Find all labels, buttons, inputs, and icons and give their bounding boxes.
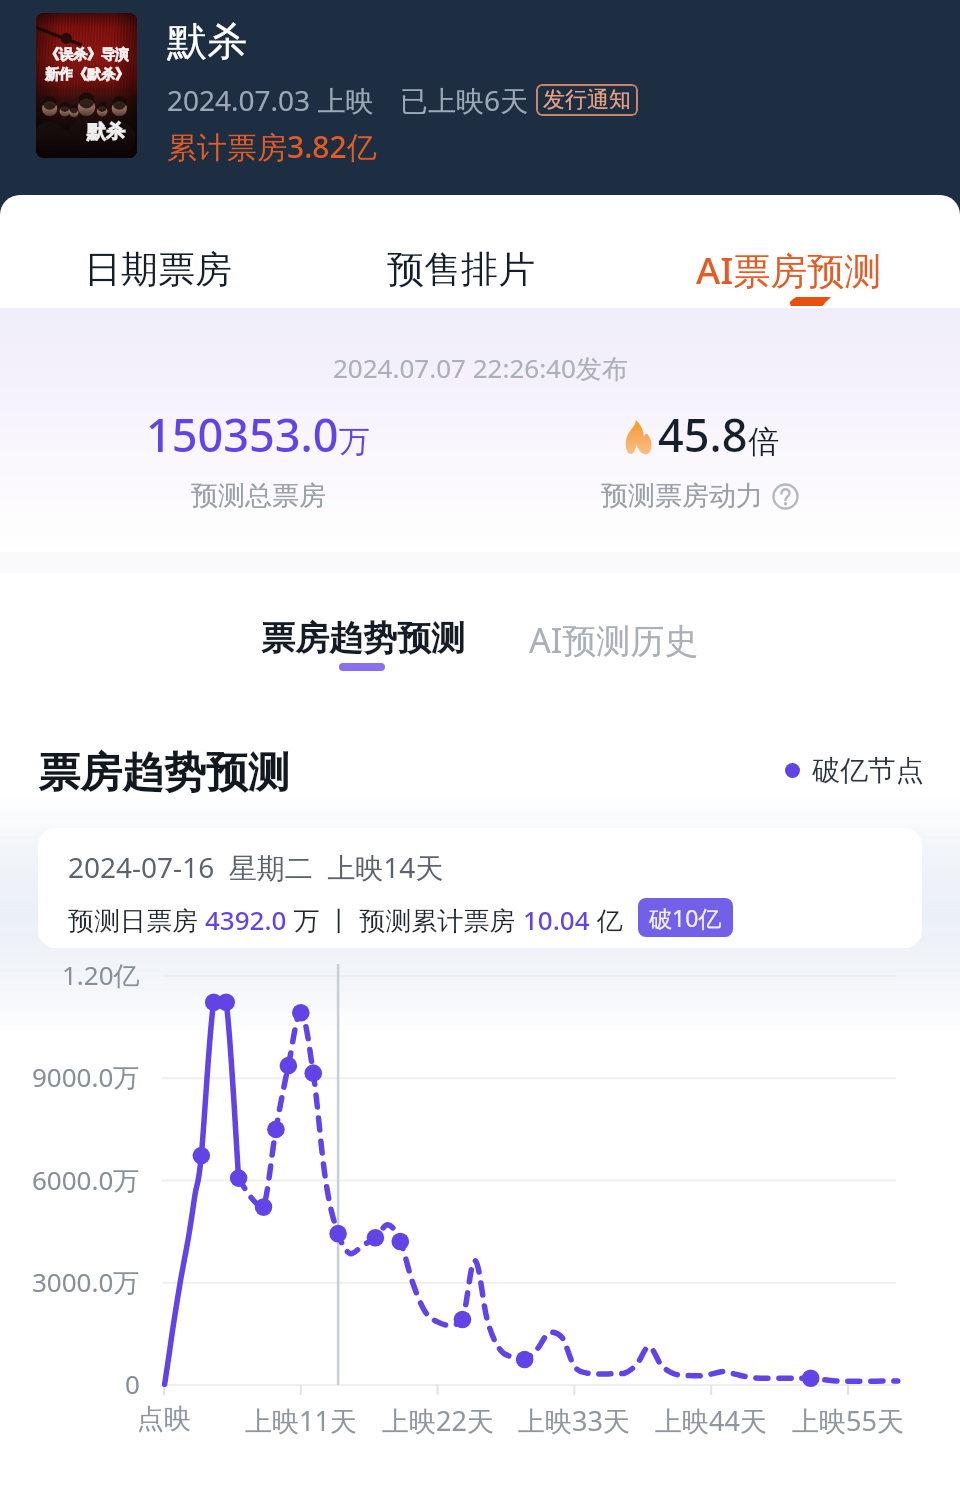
button[interactable]: 票房趋势预测 xyxy=(259,617,467,660)
button[interactable]: AI预测历史 xyxy=(527,617,701,663)
staticText: 0 xyxy=(125,1366,140,1401)
staticText: 万 丨 预测累计票房 xyxy=(287,902,523,938)
staticText: 破亿节点 xyxy=(812,753,924,788)
staticText: 4392.0 xyxy=(205,902,287,937)
staticText: 亿 xyxy=(590,902,623,938)
button[interactable]: AI票房预测 xyxy=(640,195,960,308)
staticText: 日期票房 xyxy=(84,246,232,293)
staticText: AI票房预测 xyxy=(696,244,882,295)
staticText: 预售排片 xyxy=(387,246,535,293)
button[interactable]: 2024-07-16 星期二 上映14天 xyxy=(38,828,922,948)
staticText: 1.20亿 xyxy=(62,957,140,993)
staticText: 发行通知 xyxy=(543,86,631,114)
staticText: 破10亿 xyxy=(649,902,722,933)
staticText: 新作《默杀》 xyxy=(45,66,129,84)
staticText: 10.04 xyxy=(523,902,590,937)
staticText: 6000.0万 xyxy=(32,1162,140,1198)
staticText: 上映44天 xyxy=(655,1402,767,1439)
staticText: 上映33天 xyxy=(518,1402,630,1439)
staticText: 2024.07.07 22:26:40发布 xyxy=(333,350,628,386)
staticText: 预测日票房 xyxy=(68,902,205,938)
staticText: 点映 xyxy=(137,1402,191,1436)
staticText: 上映55天 xyxy=(792,1402,904,1439)
staticText: 已上映6天 xyxy=(400,81,529,119)
staticText: 上映22天 xyxy=(382,1402,494,1439)
staticText: 上映11天 xyxy=(245,1402,357,1439)
staticText: 默杀 xyxy=(167,16,247,66)
staticText: 3000.0万 xyxy=(32,1264,140,1300)
button[interactable]: 发行通知 xyxy=(543,86,631,114)
button[interactable]: Help xyxy=(772,483,799,510)
staticText: 倍 xyxy=(748,422,779,461)
staticText: 累计票房3.82亿 xyxy=(167,126,377,167)
staticText: AI预测历史 xyxy=(529,617,699,663)
staticText: 票房趋势预测 xyxy=(38,747,290,793)
staticText: 默杀 xyxy=(87,120,125,144)
staticText: 《误杀》导演 xyxy=(45,46,129,64)
staticText: 万 xyxy=(339,422,370,461)
staticText: 150353.0 xyxy=(146,404,339,465)
button[interactable]: 日期票房 xyxy=(0,195,320,308)
staticText: 2024-07-16 星期二 上映14天 xyxy=(68,848,444,886)
staticText: 9000.0万 xyxy=(32,1059,140,1095)
staticText: 2024.07.03 上映 xyxy=(167,81,374,119)
staticText: 预测总票房 xyxy=(191,479,326,513)
staticText: 预测票房动力 xyxy=(601,479,763,513)
button[interactable]: 预售排片 xyxy=(320,195,640,308)
staticText: 45.8 xyxy=(658,404,748,465)
staticText: 票房趋势预测 xyxy=(261,617,465,660)
